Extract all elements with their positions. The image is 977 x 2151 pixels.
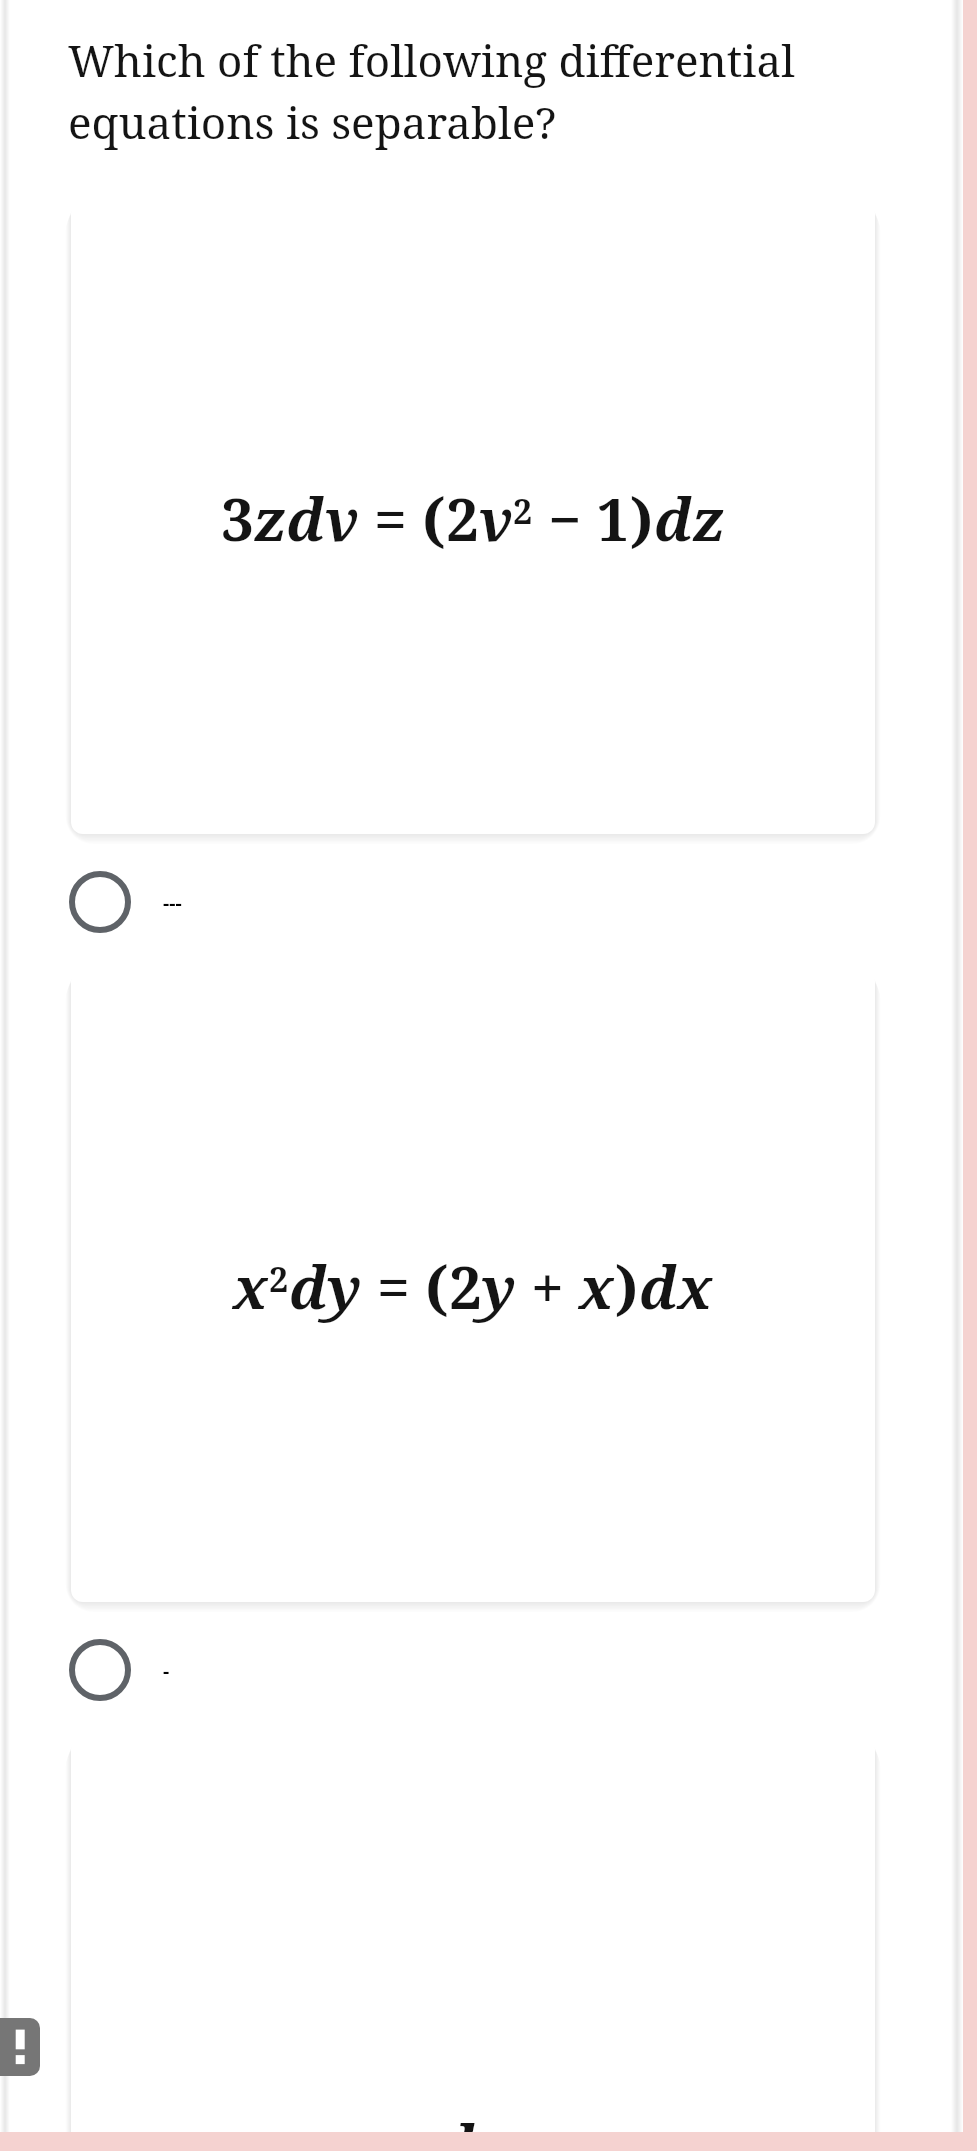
button[interactable]: x [71, 970, 875, 1602]
other: Select this answer [69, 871, 131, 933]
staticText: x [579, 1247, 615, 1326]
staticText: = [359, 479, 422, 558]
staticText: − 1 [533, 479, 630, 558]
staticText: 3 [221, 479, 254, 558]
staticText: 2 [513, 488, 533, 534]
staticText: dz [654, 479, 725, 558]
staticText: 2 [269, 1256, 289, 1302]
staticText: ) [615, 1247, 639, 1326]
staticText: ) [630, 479, 654, 558]
staticText: dx [639, 1247, 713, 1326]
button[interactable]: Select this answer [69, 1602, 977, 1738]
staticText: 2 [449, 1247, 482, 1326]
staticText: ( [425, 1247, 449, 1326]
button[interactable]: Select this answer [69, 834, 977, 970]
staticText: x [233, 1247, 269, 1326]
staticText: v [479, 479, 513, 558]
staticText: dy [289, 1247, 362, 1326]
staticText: --- [163, 889, 182, 916]
staticText: dy [437, 2106, 510, 2151]
staticText: + [516, 1247, 579, 1326]
staticText: - [163, 1657, 170, 1684]
other: Select this answer [69, 1639, 131, 1701]
staticText: zdv [254, 479, 359, 558]
button[interactable]: 3 [71, 202, 875, 834]
staticText: ( [422, 479, 446, 558]
staticText: y [482, 1247, 516, 1326]
button[interactable]: Report a problem [0, 2018, 40, 2076]
staticText: = [362, 1247, 425, 1326]
button[interactable]: dy [71, 1738, 875, 2151]
staticText: Which of the following differential equa… [68, 30, 795, 152]
staticText: 2 [446, 479, 479, 558]
